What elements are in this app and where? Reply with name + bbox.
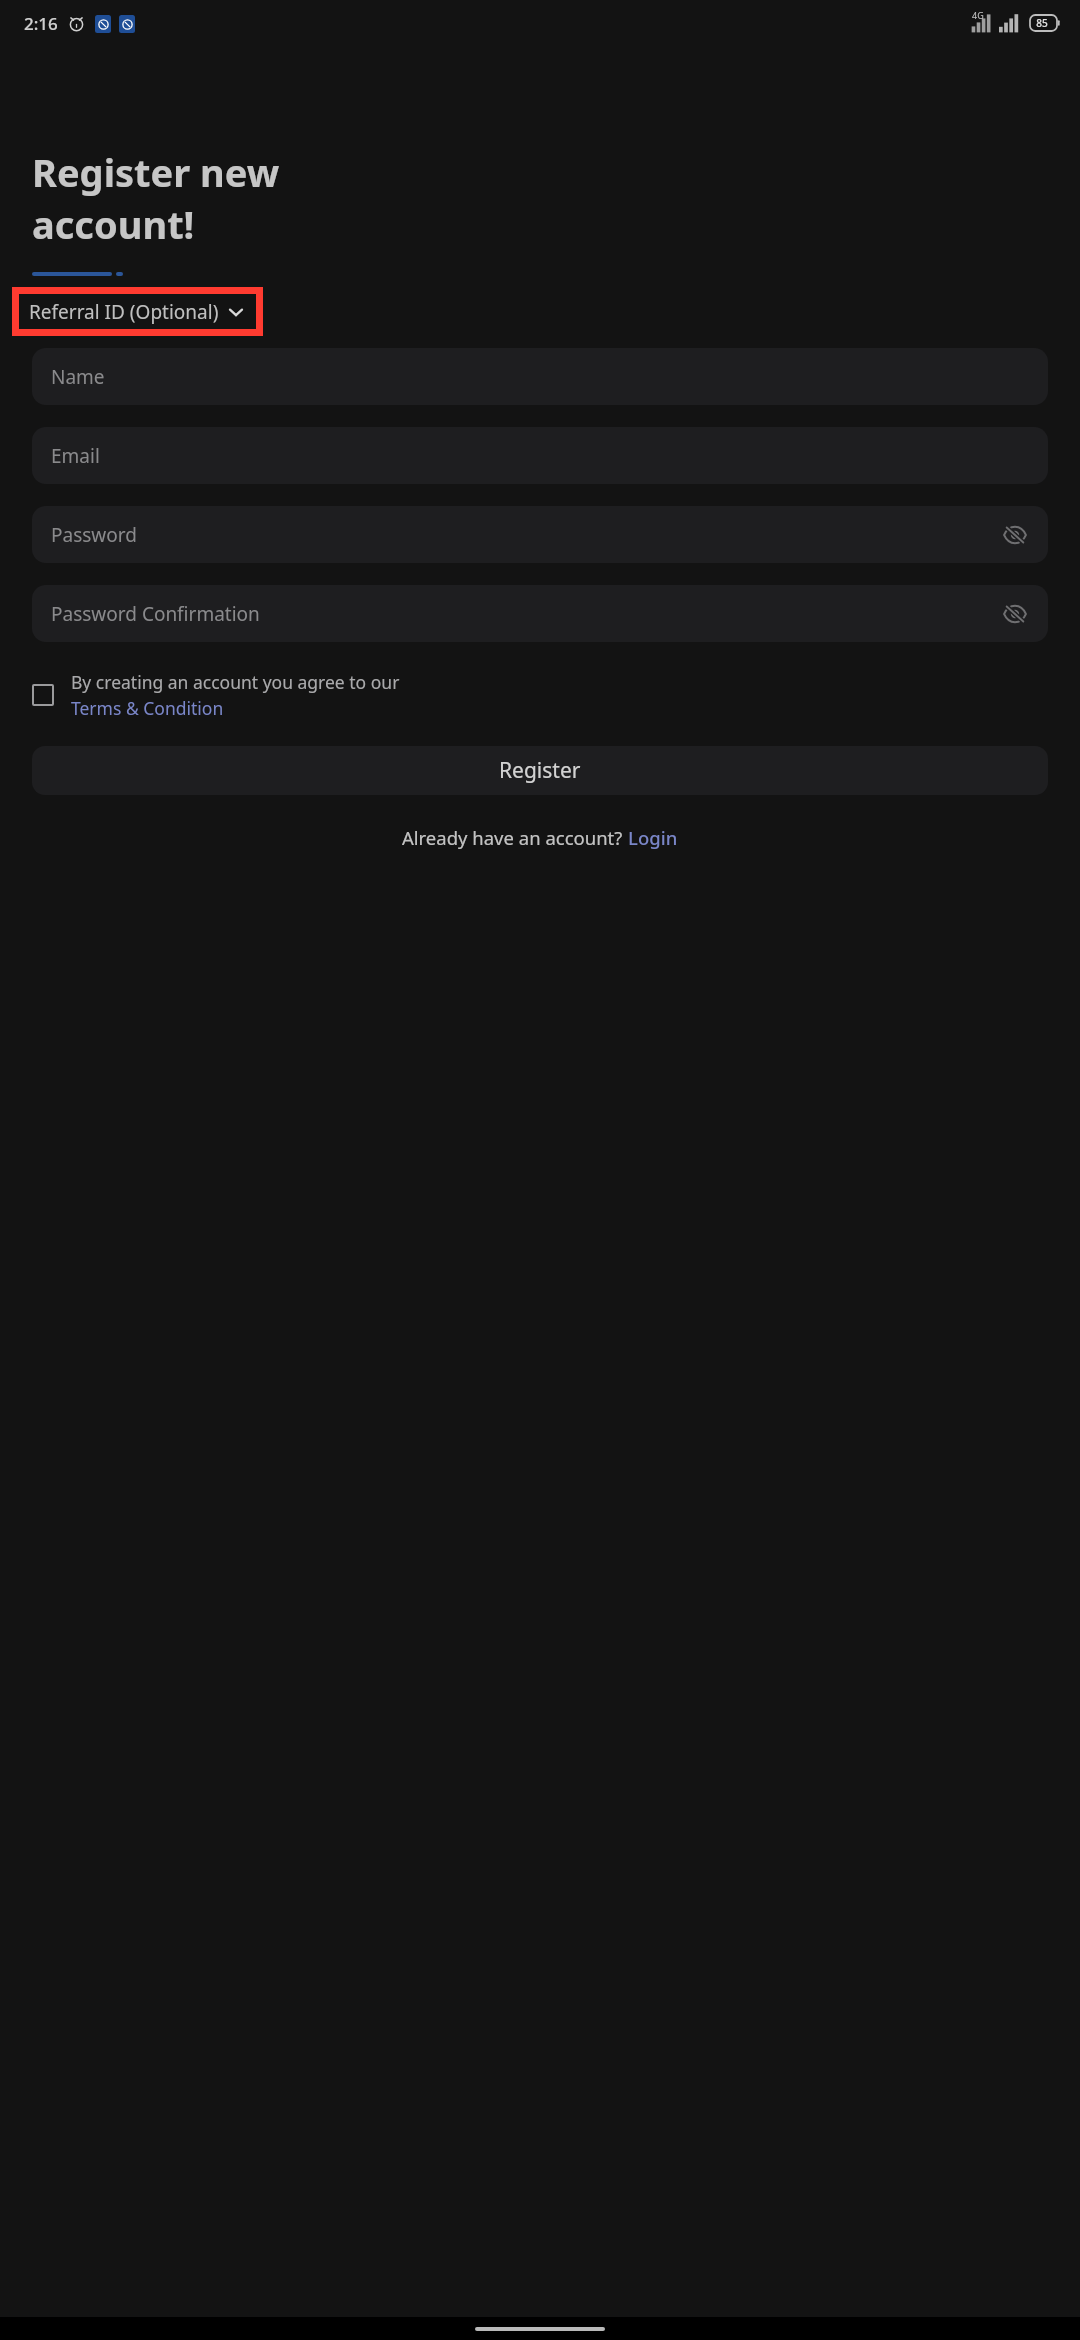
staticText: By creating an account you agree to our	[71, 670, 400, 694]
staticText: 2:16	[24, 12, 58, 35]
staticText: Register new account!	[32, 146, 280, 250]
button[interactable]: Terms & Condition	[71, 696, 224, 720]
button[interactable]: By creating an account you agree to our	[32, 670, 1048, 720]
staticText: Register	[499, 756, 581, 785]
button[interactable]: Referral ID (Optional)	[19, 294, 256, 329]
button[interactable]: Name	[32, 348, 1048, 405]
button[interactable]: Show password	[998, 597, 1032, 631]
button[interactable]: Password	[32, 506, 1048, 563]
staticText: 85	[1036, 16, 1048, 30]
staticText: Name	[51, 364, 105, 390]
staticText: Password Confirmation	[51, 601, 260, 627]
staticText: Already have an account?	[402, 825, 628, 850]
button[interactable]: Login	[628, 825, 678, 850]
button[interactable]: Password Confirmation	[32, 585, 1048, 642]
staticText: Referral ID (Optional)	[29, 299, 219, 325]
button[interactable]: Show password	[998, 518, 1032, 552]
staticText: Email	[51, 443, 100, 469]
button[interactable]: Register	[32, 746, 1048, 795]
staticText: 4G	[972, 9, 984, 21]
staticText: Password	[51, 522, 137, 548]
button[interactable]: Email	[32, 427, 1048, 484]
